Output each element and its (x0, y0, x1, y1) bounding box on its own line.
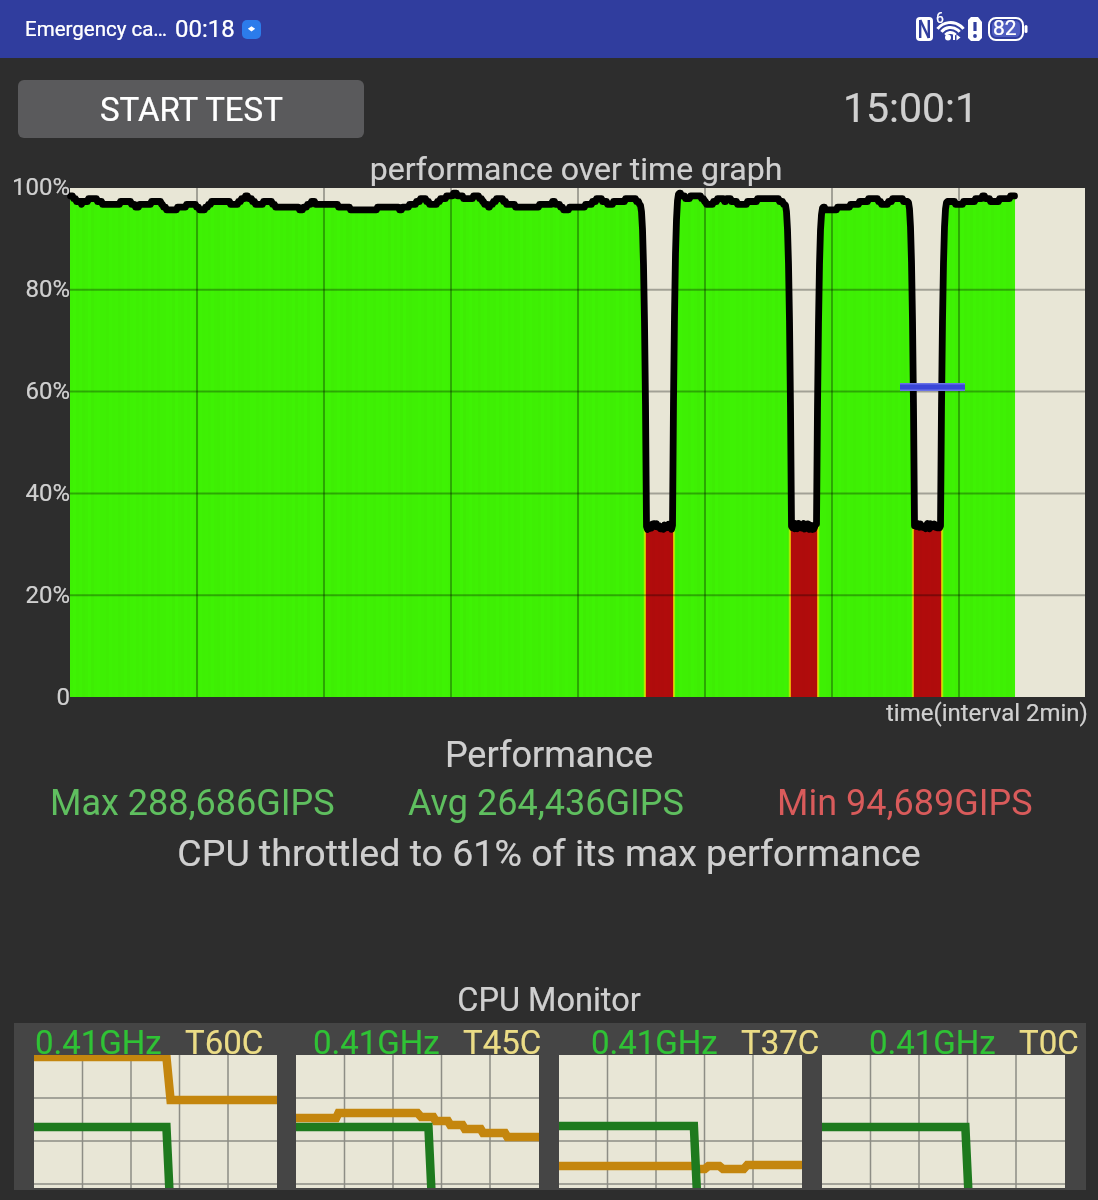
staticText: 6 (936, 10, 944, 26)
staticText: 100% (0, 173, 70, 201)
staticText: Min 94,689GIPS (777, 782, 1033, 824)
staticText: Max 288,686GIPS (50, 782, 335, 824)
staticText: 80% (0, 275, 70, 303)
staticText: CPU Monitor (0, 981, 1098, 1019)
staticText: T37C (741, 1023, 820, 1062)
staticText: 20% (0, 581, 70, 609)
staticText: 0 (0, 683, 70, 711)
staticText: 0.41GHz (35, 1023, 162, 1062)
staticText: 0.41GHz (591, 1023, 718, 1062)
staticText: 60% (0, 377, 70, 405)
staticText: time(interval 2min) (886, 699, 1088, 727)
button[interactable]: 0.41GHz (591, 1023, 831, 1186)
staticText: START TEST (100, 90, 283, 129)
staticText: Avg 264,436GIPS (408, 782, 684, 824)
staticText: 0.41GHz (313, 1023, 440, 1062)
staticText: T0C (1019, 1023, 1079, 1062)
staticText: Performance (0, 734, 1098, 776)
staticText: Emergency ca… (25, 17, 168, 41)
staticText: T60C (185, 1023, 264, 1062)
staticText: 0.41GHz (869, 1023, 996, 1062)
button[interactable]: START TEST (18, 80, 364, 138)
staticText: 40% (0, 479, 70, 507)
button[interactable]: 0.41GHz (313, 1023, 553, 1186)
staticText: 82 (993, 16, 1017, 41)
button[interactable]: 0.41GHz (35, 1023, 275, 1186)
staticText: performance over time graph (27, 150, 1098, 188)
staticText: 15:00:1 (843, 84, 979, 132)
other: Status icons (0, 0, 1098, 58)
staticText: 00:18 (175, 15, 235, 43)
staticText: T45C (463, 1023, 542, 1062)
staticText: CPU throttled to 61% of its max performa… (0, 831, 1098, 875)
button[interactable]: 0.41GHz (869, 1023, 1098, 1186)
